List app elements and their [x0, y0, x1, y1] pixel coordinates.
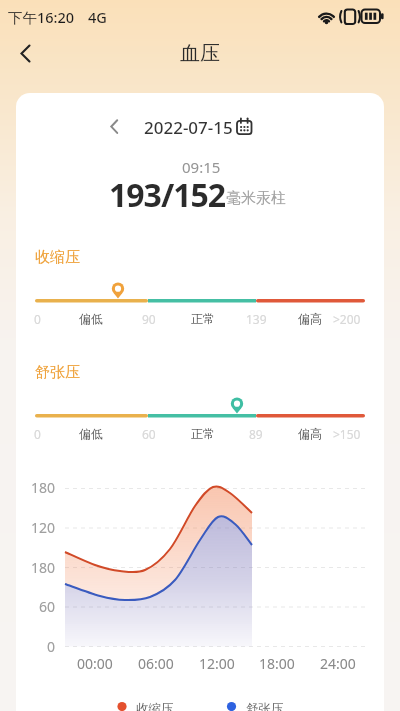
staticText: 180	[31, 478, 56, 497]
staticText: 偏低	[79, 426, 103, 441]
staticText: 0	[34, 311, 41, 327]
staticText: 舒张压	[246, 701, 284, 711]
staticText: 正常	[191, 426, 215, 441]
staticText: 血压	[180, 41, 220, 66]
staticText: 偏高	[298, 426, 322, 441]
staticText: 舒张压	[35, 363, 80, 382]
staticText: 193/152	[109, 173, 226, 217]
staticText: >200	[333, 311, 361, 327]
staticText: 正常	[191, 311, 215, 326]
staticText: 180	[31, 558, 56, 577]
staticText: 毫米汞柱	[226, 189, 286, 208]
staticText: 09:15	[182, 157, 221, 177]
staticText: 06:00	[138, 654, 174, 673]
staticText: 2022-07-15	[144, 116, 233, 139]
staticText: 89	[249, 426, 263, 442]
staticText: 收缩压	[35, 248, 80, 267]
staticText: 00:00	[77, 654, 113, 673]
staticText: 139	[246, 311, 267, 327]
staticText: 18:00	[259, 654, 295, 673]
staticText: 4G	[88, 7, 107, 27]
staticText: 90	[142, 311, 156, 327]
staticText: >150	[333, 426, 361, 442]
staticText: 60	[142, 426, 156, 442]
staticText: 偏低	[79, 311, 103, 326]
staticText: 收缩压	[136, 701, 174, 711]
staticText: 偏高	[298, 311, 322, 326]
staticText: 0	[47, 637, 56, 656]
staticText: 0	[34, 426, 41, 442]
staticText: 120	[31, 518, 56, 537]
staticText: 24:00	[320, 654, 356, 673]
staticText: 下午16:20	[8, 7, 75, 27]
staticText: 60	[39, 597, 56, 616]
staticText: 12:00	[199, 654, 235, 673]
